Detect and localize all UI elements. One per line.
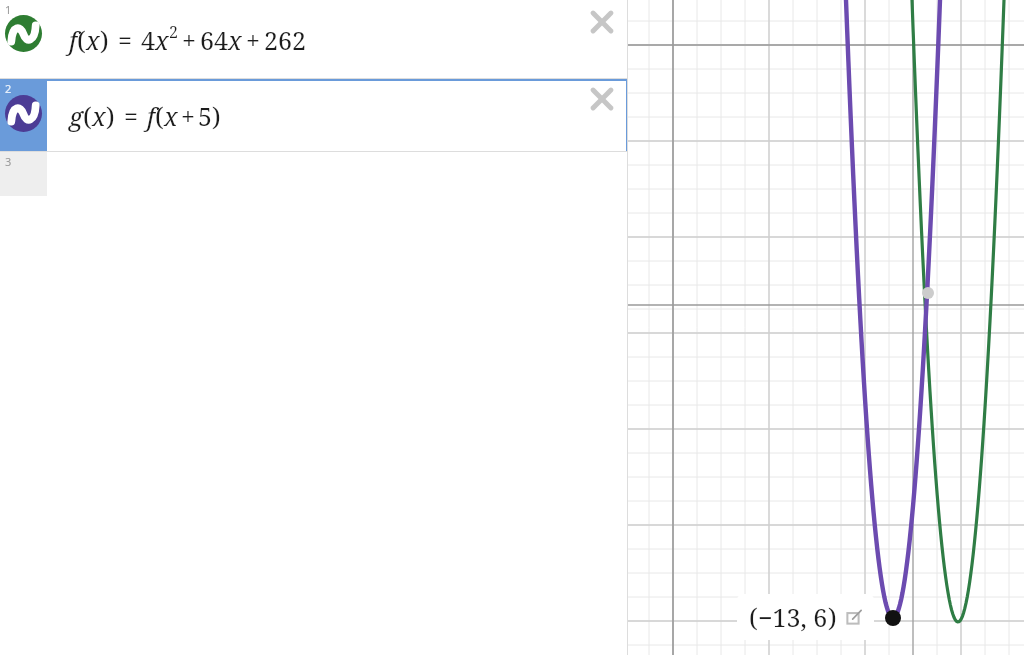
staticText: x: [86, 23, 100, 57]
staticText: 3: [5, 154, 12, 169]
staticText: 64: [200, 23, 228, 57]
staticText: 5: [198, 99, 212, 133]
other: Edit point: [845, 609, 862, 626]
staticText: +: [182, 23, 196, 57]
button[interactable]: 3: [0, 152, 628, 196]
staticText: x: [155, 23, 169, 57]
staticText: ): [212, 99, 221, 133]
staticText: ): [828, 600, 837, 634]
button[interactable]: 2: [0, 79, 628, 152]
staticText: 4: [141, 23, 155, 57]
staticText: =: [124, 99, 138, 133]
staticText: g: [69, 99, 83, 133]
staticText: 2: [5, 81, 12, 96]
button[interactable]: Delete expression 2: [586, 83, 618, 115]
staticText: ): [106, 99, 115, 133]
button[interactable]: Delete expression 1: [586, 6, 618, 38]
staticText: x: [228, 23, 242, 57]
staticText: f: [69, 23, 77, 57]
staticText: 262: [264, 23, 306, 57]
staticText: (: [155, 99, 164, 133]
staticText: +: [246, 23, 260, 57]
staticText: f: [147, 99, 155, 133]
button[interactable]: 1: [0, 0, 628, 79]
staticText: 1: [5, 2, 12, 17]
staticText: ): [100, 23, 109, 57]
staticText: x: [164, 99, 178, 133]
staticText: (: [83, 99, 92, 133]
staticText: =: [118, 23, 132, 57]
staticText: x: [92, 99, 106, 133]
staticText: (: [77, 23, 86, 57]
button[interactable]: (: [737, 594, 874, 640]
staticText: −13, 6: [758, 600, 828, 634]
staticText: 2: [169, 21, 178, 43]
staticText: (: [749, 600, 758, 634]
staticText: +: [181, 99, 195, 133]
